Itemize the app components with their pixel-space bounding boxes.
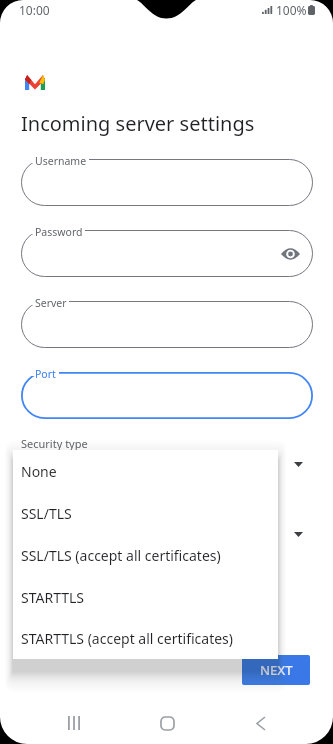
button[interactable]: Username (21, 159, 313, 206)
button[interactable]: SSL/TLS (accept all certificates) (13, 534, 278, 576)
staticText: Username (35, 154, 87, 168)
button[interactable]: Show password (276, 240, 304, 268)
staticText: None (21, 462, 57, 481)
staticText: 100% (276, 2, 307, 18)
button[interactable]: None (13, 450, 278, 492)
button[interactable]: Back (236, 700, 288, 744)
staticText: STARTTLS (21, 588, 85, 607)
button[interactable]: Home (141, 700, 193, 744)
staticText: Password (35, 225, 83, 239)
button[interactable]: STARTTLS (accept all certificates) (13, 618, 278, 659)
button[interactable]: SSL/TLS (13, 492, 278, 534)
button[interactable]: STARTTLS (13, 576, 278, 618)
staticText: SSL/TLS (21, 504, 72, 523)
staticText: STARTTLS (accept all certificates) (21, 629, 233, 648)
staticText: Port (35, 367, 56, 381)
staticText: NEXT (260, 661, 293, 679)
button[interactable]: NEXT (242, 655, 310, 685)
button[interactable]: Port (21, 372, 313, 419)
button[interactable]: Password (21, 230, 313, 277)
button[interactable]: Server (21, 301, 313, 348)
staticText: 10:00 (19, 2, 50, 18)
staticText: Incoming server settings (21, 110, 255, 137)
button[interactable]: Recent apps (48, 700, 100, 744)
staticText: Security type (21, 436, 88, 451)
staticText: SSL/TLS (accept all certificates) (21, 546, 221, 565)
staticText: Server (35, 296, 67, 310)
